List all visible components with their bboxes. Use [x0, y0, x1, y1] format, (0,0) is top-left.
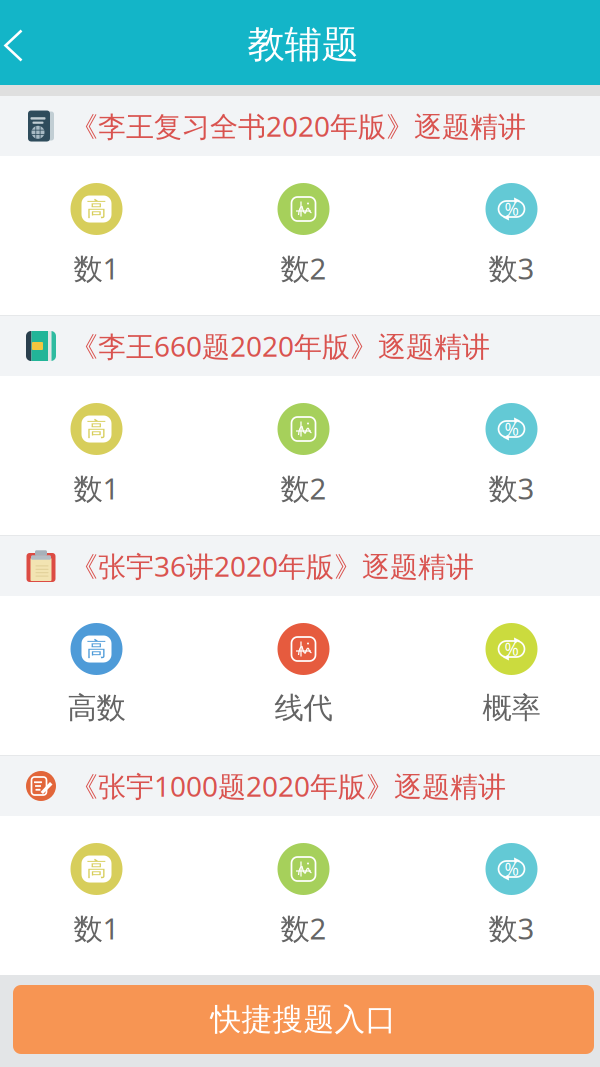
staticText: 高 [86, 197, 106, 221]
staticText: 数3 [488, 468, 534, 507]
button[interactable]: 《张宇36讲2020年版》逐题精讲 [0, 536, 600, 596]
button[interactable]: 线代 [200, 623, 400, 727]
staticText: % [504, 417, 518, 440]
staticText: 数1 [73, 248, 119, 287]
staticText: 概率 [482, 690, 540, 726]
button[interactable]: 《张宇1000题2020年版》逐题精讲 [0, 756, 600, 816]
staticText: 高 [86, 637, 106, 661]
button[interactable]: 数2 [200, 843, 400, 947]
staticText: 数2 [280, 468, 326, 507]
staticText: 数1 [73, 468, 119, 507]
staticText: 《李王660题2020年版》逐题精讲 [70, 327, 490, 365]
button[interactable]: 《李王660题2020年版》逐题精讲 [0, 316, 600, 376]
staticText: 《李王复习全书2020年版》逐题精讲 [70, 107, 526, 145]
staticText: 数3 [488, 908, 534, 947]
staticText: 线代 [274, 690, 332, 726]
staticText: 快捷搜题入口 [210, 1001, 396, 1038]
staticText: % [504, 857, 518, 880]
staticText: 高 [86, 857, 106, 881]
staticText: 高 [86, 417, 106, 441]
button[interactable]: % [400, 403, 600, 507]
staticText: % [504, 197, 518, 220]
button[interactable]: % [400, 843, 600, 947]
staticText: 教辅题 [247, 22, 358, 67]
button[interactable]: % [400, 623, 600, 727]
staticText: 数2 [280, 248, 326, 287]
staticText: 数3 [488, 248, 534, 287]
staticText: 数1 [73, 908, 119, 947]
staticText: 《张宇36讲2020年版》逐题精讲 [70, 547, 474, 585]
button[interactable]: % [400, 183, 600, 287]
button[interactable]: 高 [0, 403, 200, 507]
button[interactable]: 数2 [200, 403, 400, 507]
button[interactable]: 高 [0, 843, 200, 947]
button[interactable]: 快捷搜题入口 [13, 985, 594, 1054]
button[interactable]: Back [0, 7, 48, 77]
button[interactable]: 数2 [200, 183, 400, 287]
staticText: 高数 [67, 690, 125, 726]
staticText: % [504, 637, 518, 660]
button[interactable]: 高 [0, 183, 200, 287]
button[interactable]: 高 [0, 623, 200, 727]
staticText: 《张宇1000题2020年版》逐题精讲 [70, 767, 506, 805]
staticText: 数2 [280, 908, 326, 947]
button[interactable]: 《李王复习全书2020年版》逐题精讲 [0, 96, 600, 156]
